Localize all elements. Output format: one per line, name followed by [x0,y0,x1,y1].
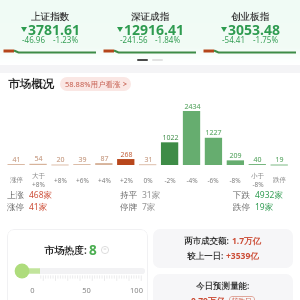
staticText: 1.7万亿 [232,235,262,247]
staticText: 40 [253,155,262,165]
staticText: -54.41 [222,34,246,45]
staticText: 12916.41 [124,20,184,39]
staticText: 4932家 [255,189,283,201]
staticText: +3539亿 [226,250,259,262]
staticText: 停牌 [120,202,137,213]
staticText: -8% [252,180,264,189]
staticText: +6% [76,176,89,185]
staticText: 100 [130,285,143,295]
staticText: 深证成指 [131,11,169,23]
staticText: 0 [30,285,35,295]
staticText: 下跌 [233,190,250,201]
staticText: -1.75% [253,34,279,45]
staticText: -8% [229,176,241,185]
staticText: 8 [89,241,97,259]
staticText: 39 [78,155,87,165]
staticText: 20 [56,155,65,165]
staticText: 41 [12,155,21,165]
staticText: 0.79万亿 [191,295,225,300]
staticText: 市场热度: [44,243,87,257]
staticText: +4% [98,176,111,185]
button[interactable]: 上证指数 [0,0,100,65]
staticText: 跌停 [233,202,250,213]
staticText: 468家 [29,189,53,201]
staticText: 87 [100,154,109,164]
staticText: 今日预测量能: [196,280,250,292]
staticText: 2434 [184,102,201,112]
staticText: 涨停 [10,176,23,184]
staticText: 19 [275,155,284,165]
staticText: 上证指数 [31,11,69,23]
staticText: 涨停 [7,202,24,213]
staticText: +2% [120,176,133,185]
staticText: +8% [54,176,67,185]
staticText: -1.23% [53,34,79,45]
staticText: 较上一日: [187,250,226,262]
staticText: 跌停 [273,176,286,184]
staticText: 54 [34,154,43,164]
staticText: -46.96 [22,34,46,45]
staticText: 市场概况 [8,77,54,91]
staticText: -2% [164,176,176,185]
button[interactable]: 今日预测量能: [153,274,293,300]
staticText: 创业板指 [231,11,269,23]
staticText: 上涨 [7,190,24,201]
staticText: +8% [32,180,45,189]
other: 热度说明 [101,246,109,254]
staticText: 大于 [32,172,45,180]
staticText: 较昨日 [232,297,252,300]
staticText: 小于 [251,172,264,180]
staticText: 50 [82,285,91,295]
staticText: 0% [143,176,153,185]
staticText: 58.88%用户看涨 [65,79,121,89]
button[interactable]: 两市成交额: [153,229,293,268]
staticText: 31家 [142,189,161,201]
staticText: 209 [229,151,242,161]
staticText: 19家 [255,201,274,213]
staticText: -4% [186,176,198,185]
staticText: 3053.48 [228,20,280,39]
staticText: -6% [207,176,219,185]
button[interactable]: 深证成指 [100,0,200,65]
button[interactable]: 58.88%用户看涨 [60,77,131,91]
staticText: 持平 [120,190,137,201]
staticText: -241.56 [120,34,148,45]
staticText: 41家 [29,201,48,213]
staticText: 31 [144,155,153,165]
staticText: 两市成交额: [184,235,232,247]
button[interactable]: 市场热度: [7,229,148,300]
button[interactable]: 创业板指 [200,0,300,65]
staticText: 7家 [142,201,156,213]
staticText: 3781.61 [28,20,80,39]
staticText: 1227 [205,128,222,138]
staticText: 1022 [162,133,179,143]
staticText: -1.84% [155,34,181,45]
staticText: 268 [120,150,133,160]
